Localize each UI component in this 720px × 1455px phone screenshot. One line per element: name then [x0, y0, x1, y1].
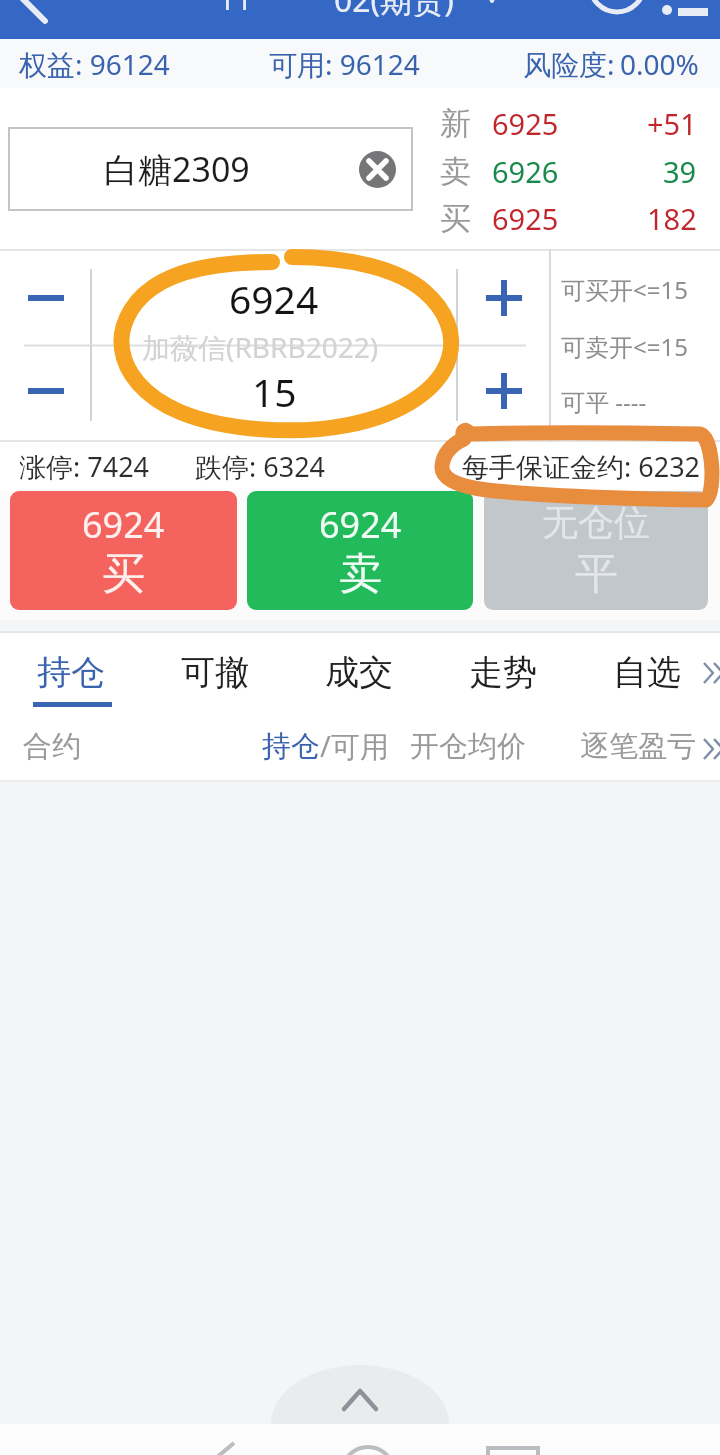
button[interactable]: 持仓 [5, 631, 137, 701]
staticText: 可平 ---- [561, 385, 647, 418]
staticText: 0.00% [620, 45, 699, 83]
staticText: 39 [663, 152, 697, 191]
button[interactable]: More tabs [700, 657, 720, 681]
button[interactable]: 6924 [247, 491, 473, 610]
staticText: 合约 [23, 728, 81, 765]
staticText: 卖 [440, 152, 471, 191]
staticText: 权益: 96124 [19, 45, 170, 83]
staticText: 开仓均价 [410, 728, 526, 765]
staticText: 11 [218, 0, 253, 17]
staticText: 6924 [82, 500, 165, 549]
staticText: 可撤 [181, 651, 249, 694]
staticText: 加薇信(RBRB2022) [142, 328, 379, 366]
staticText: 白糖2309 [104, 146, 250, 192]
staticText: 自选 [613, 651, 681, 694]
button[interactable]: Increase [457, 250, 550, 346]
button[interactable]: 走势 [437, 631, 569, 701]
staticText: 买 [102, 547, 145, 601]
staticText: /可用 [320, 726, 389, 766]
button[interactable]: 无仓位 [484, 491, 708, 610]
staticText: 无仓位 [542, 500, 650, 545]
staticText: 6925 [492, 199, 559, 238]
staticText: 走势 [469, 651, 537, 694]
staticText: 6925 [492, 104, 559, 143]
staticText: 跌停: 6324 [195, 448, 326, 485]
button[interactable]: 自选 [581, 631, 713, 701]
staticText: 成交 [325, 651, 393, 694]
button[interactable]: More columns [700, 733, 720, 757]
staticText: 可用: 96124 [269, 45, 420, 83]
button[interactable]: 成交 [293, 631, 425, 701]
staticText: 15 [252, 365, 297, 418]
staticText: 涨停: 7424 [19, 448, 150, 485]
staticText: 平 [575, 547, 618, 601]
staticText: 6924 [319, 500, 402, 549]
button[interactable]: Clear text [359, 151, 396, 188]
staticText: 风险度: [523, 45, 615, 83]
staticText: 持仓 [262, 728, 320, 765]
staticText: 新 [440, 104, 471, 143]
staticText: +51 [647, 104, 697, 143]
staticText: 每手保证金约: 6232 [462, 448, 701, 485]
staticText: 买 [440, 199, 471, 238]
button[interactable]: Increase [457, 343, 550, 439]
button[interactable]: Decrease [0, 343, 91, 439]
staticText: 卖 [339, 547, 382, 601]
staticText: 可卖开<=15 [561, 330, 688, 363]
button[interactable]: 可撤 [149, 631, 281, 701]
staticText: 02(期货) [334, 0, 454, 17]
button[interactable]: 白糖2309 [9, 128, 412, 210]
staticText: 182 [647, 199, 697, 238]
staticText: 6924 [229, 272, 319, 325]
button[interactable]: 6924 [10, 491, 237, 610]
button[interactable]: Decrease [0, 250, 91, 346]
staticText: 持仓 [37, 651, 105, 694]
staticText: 6926 [492, 152, 559, 191]
staticText: 可买开<=15 [561, 273, 688, 306]
staticText: 逐笔盈亏 [580, 728, 696, 765]
